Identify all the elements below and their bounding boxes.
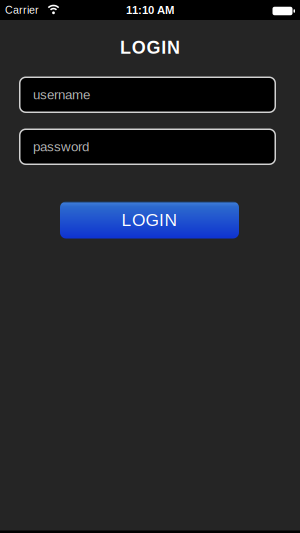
staticText: LOGIN [121, 210, 177, 230]
textField[interactable]: username [33, 87, 276, 102]
button[interactable]: LOGIN [60, 201, 239, 238]
staticText: 11:10 AM [126, 4, 174, 16]
staticText: LOGIN [120, 37, 180, 57]
staticText: username [33, 87, 90, 102]
staticText: Carrier [5, 4, 39, 16]
secureTextField[interactable]: password [33, 139, 276, 154]
staticText: password [33, 139, 89, 154]
